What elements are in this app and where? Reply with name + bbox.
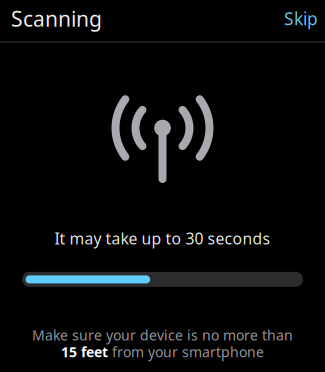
staticText: 15 feet: [61, 342, 108, 361]
staticText: It may take up to 30 seconds: [54, 228, 270, 249]
staticText: Scanning: [11, 4, 102, 32]
button[interactable]: Skip: [280, 3, 322, 34]
staticText: Skip: [284, 7, 318, 30]
staticText: Make sure your device is no more than: [32, 326, 293, 344]
staticText: from your smartphone: [112, 342, 264, 361]
